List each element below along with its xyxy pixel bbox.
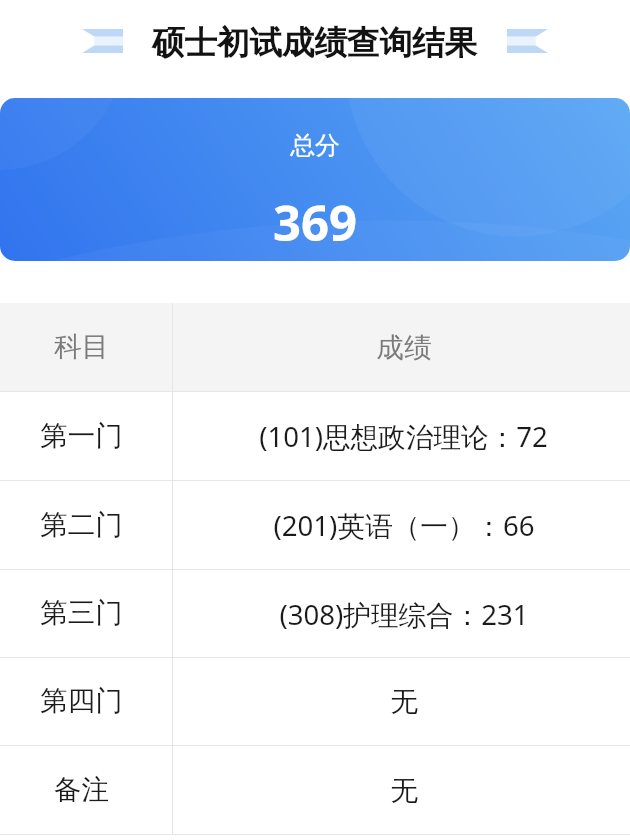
button[interactable]: 第三门 bbox=[0, 570, 630, 657]
button[interactable]: 备注 bbox=[0, 746, 630, 834]
staticText: 总分 bbox=[290, 130, 340, 161]
staticText: 第二门 bbox=[40, 508, 123, 543]
staticText: 第一门 bbox=[40, 419, 123, 454]
staticText: 科目 bbox=[54, 330, 109, 365]
staticText: (201)英语（一）：66 bbox=[273, 506, 535, 544]
button[interactable]: 总分 369 bbox=[0, 98, 630, 261]
staticText: 无 bbox=[390, 773, 418, 808]
staticText: 备注 bbox=[54, 773, 109, 808]
staticText: 第四门 bbox=[40, 684, 123, 719]
staticText: 369 bbox=[273, 189, 358, 256]
staticText: 第三门 bbox=[40, 596, 123, 631]
staticText: 硕士初试成绩查询结果 bbox=[152, 23, 477, 64]
staticText: 成绩 bbox=[376, 330, 432, 365]
button[interactable]: 第二门 bbox=[0, 481, 630, 569]
staticText: (101)思想政治理论：72 bbox=[259, 417, 548, 455]
button[interactable]: 第一门 bbox=[0, 392, 630, 480]
staticText: (308)护理综合：231 bbox=[279, 595, 529, 633]
button[interactable]: 第四门 bbox=[0, 658, 630, 745]
staticText: 无 bbox=[390, 684, 418, 719]
button[interactable]: 科目 bbox=[0, 303, 630, 391]
